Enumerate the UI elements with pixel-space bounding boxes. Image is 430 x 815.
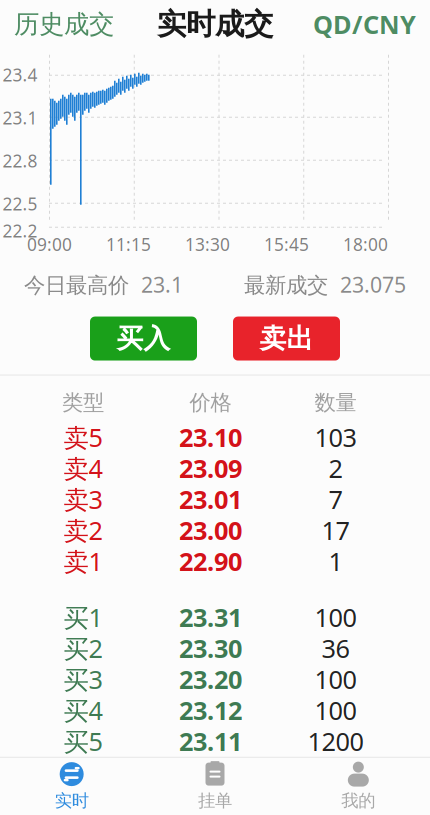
staticText: 买4 [63,693,102,727]
button[interactable]: QD/CNY [299,0,430,49]
staticText: 23.00 [179,513,242,547]
staticText: 卖5 [63,420,102,454]
staticText: 11:15 [106,233,151,256]
staticText: 数量 [314,390,356,416]
staticText: 18:00 [343,233,388,256]
button[interactable]: 卖出 [233,317,340,361]
staticText: 103 [314,420,356,454]
staticText: 7 [328,482,342,516]
staticText: 13:30 [185,233,230,256]
staticText: 23.4 [2,63,37,86]
staticText: 1 [328,544,342,578]
staticText: 卖3 [63,482,102,516]
staticText: 23.12 [179,693,242,727]
staticText: 22.2 [2,219,37,242]
staticText: 17 [321,513,349,547]
staticText: 23.30 [179,631,242,665]
staticText: 最新成交 23.075 [244,270,406,298]
staticText: 23.20 [179,662,242,696]
staticText: 实时成交 [157,6,273,42]
staticText: 卖4 [63,451,102,485]
staticText: 买3 [63,662,102,696]
staticText: 卖出 [259,322,313,355]
staticText: 卖1 [63,544,102,578]
staticText: 100 [314,693,356,727]
staticText: 23.31 [179,600,242,634]
staticText: 类型 [62,390,104,416]
staticText: 23.1 [2,106,37,129]
button[interactable]: 买入 [90,317,197,361]
staticText: 100 [314,600,356,634]
staticText: 23.01 [179,482,242,516]
staticText: 卖2 [63,513,102,547]
button[interactable]: 我的 [287,755,430,815]
staticText: 挂单 [198,790,232,811]
staticText: 09:00 [27,233,72,256]
staticText: 1200 [307,724,363,758]
staticText: 22.8 [2,149,37,172]
staticText: 买入 [116,322,170,355]
staticText: 今日最高价 23.1 [24,270,183,298]
button[interactable]: 实时 [0,755,143,815]
staticText: 36 [321,631,349,665]
staticText: 历史成交 [14,9,114,40]
staticText: 买2 [63,631,102,665]
button[interactable]: 历史成交 [0,1,128,48]
staticText: 100 [314,662,356,696]
staticText: 价格 [189,390,231,416]
staticText: 23.09 [179,451,242,485]
staticText: 买1 [63,600,102,634]
staticText: 2 [328,451,342,485]
staticText: 23.10 [179,420,242,454]
staticText: 我的 [341,790,375,811]
staticText: 22.90 [179,544,242,578]
staticText: 15:45 [264,233,309,256]
staticText: 实时 [55,790,89,811]
staticText: 22.5 [2,192,37,215]
staticText: QD/CNY [313,7,416,41]
button[interactable]: 挂单 [143,755,287,815]
staticText: 23.11 [179,724,242,758]
staticText: 买5 [63,724,102,758]
